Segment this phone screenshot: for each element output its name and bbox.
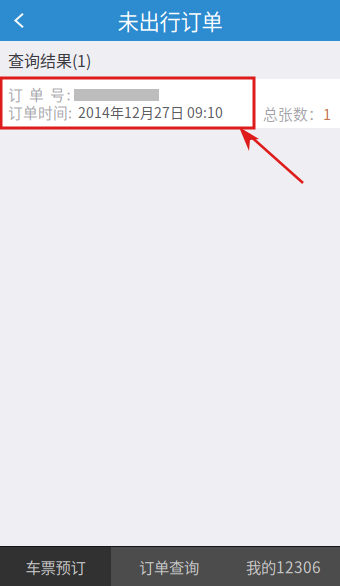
staticText: 订单查询 bbox=[139, 555, 199, 578]
staticText: 2014年12月27日 09:10 bbox=[78, 102, 223, 122]
staticText: 未出行订单 bbox=[117, 5, 222, 36]
button[interactable]: 订单查询 bbox=[111, 547, 227, 586]
staticText: 查询结果(1) bbox=[8, 48, 91, 72]
staticText: 1 bbox=[323, 103, 331, 124]
staticText: 订单时间: bbox=[8, 101, 72, 123]
button[interactable]: 车票预订 bbox=[0, 547, 111, 586]
button[interactable]: 我的12306 bbox=[227, 547, 340, 586]
button[interactable]: Back bbox=[0, 0, 38, 41]
staticText: 我的12306 bbox=[246, 555, 321, 578]
staticText: 订 单 号: bbox=[8, 83, 70, 105]
staticText: 总张数： bbox=[263, 103, 323, 124]
staticText: 车票预订 bbox=[25, 555, 85, 578]
